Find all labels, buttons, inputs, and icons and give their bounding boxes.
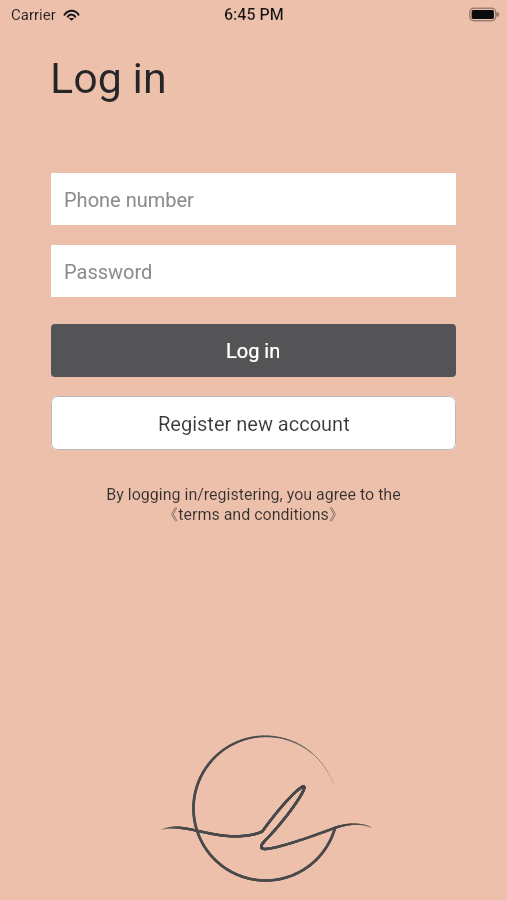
button[interactable]: By logging in/registering, you agree to … (0, 485, 507, 525)
other: Wi-Fi (63, 9, 80, 21)
staticText: Phone number (64, 188, 194, 211)
staticText: Log in (50, 53, 167, 103)
staticText: Password (64, 260, 153, 283)
button[interactable]: Log in (51, 324, 456, 377)
staticText: Register new account (158, 412, 350, 435)
button[interactable]: Password (51, 245, 456, 297)
button[interactable]: Phone number (51, 173, 456, 225)
button[interactable]: Register new account (51, 396, 456, 450)
staticText: Carrier (11, 6, 56, 24)
other: Brand logo (0, 0, 507, 900)
other: Battery full (469, 8, 500, 21)
staticText: 6:45 PM (224, 5, 284, 24)
staticText: Log in (226, 339, 281, 362)
